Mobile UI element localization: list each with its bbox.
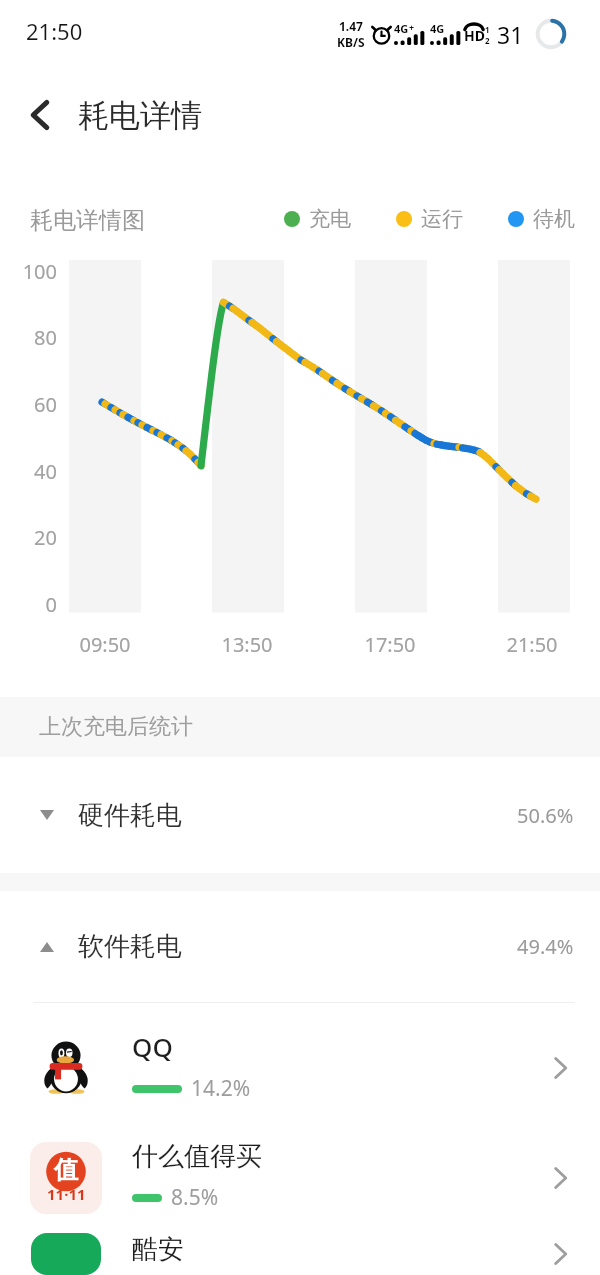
staticText: 硬件耗电 <box>78 799 182 832</box>
staticText: 11·11 <box>47 1184 86 1204</box>
staticText: KB/S <box>337 34 365 50</box>
staticText: 上次充电后统计 <box>39 713 193 741</box>
button[interactable]: 值 <box>0 1123 600 1233</box>
other: Details <box>548 1056 572 1080</box>
staticText: 60 <box>0 391 57 418</box>
staticText: 运行 <box>421 206 463 232</box>
staticText: 21:50 <box>487 631 577 658</box>
staticText: QQ <box>132 1029 173 1064</box>
staticText: 80 <box>0 324 57 351</box>
staticText: 2 <box>485 35 490 46</box>
staticText: 充电 <box>309 206 351 232</box>
button[interactable]: Back <box>10 85 70 145</box>
staticText: 值 <box>54 1155 78 1185</box>
staticText: 软件耗电 <box>78 930 182 963</box>
button[interactable]: 酷安 <box>0 1233 600 1275</box>
staticText: + <box>409 21 415 33</box>
staticText: 耗电详情图 <box>30 206 145 235</box>
staticText: 14.2% <box>191 1074 251 1103</box>
staticText: 20 <box>0 524 57 551</box>
staticText: 21:50 <box>26 16 83 46</box>
staticText: 8.5% <box>171 1183 219 1212</box>
staticText: 49.4% <box>517 933 574 960</box>
staticText: 1 <box>485 24 490 35</box>
button[interactable]: QQ <box>0 1013 600 1123</box>
other: Details <box>548 1166 572 1190</box>
staticText: 耗电详情 <box>78 96 202 135</box>
staticText: 4G <box>430 21 445 36</box>
staticText: 09:50 <box>60 631 150 658</box>
staticText: 31 <box>497 19 524 50</box>
staticText: 什么值得买 <box>132 1140 262 1173</box>
staticText: 13:50 <box>202 631 292 658</box>
staticText: HD <box>464 26 485 45</box>
staticText: 40 <box>0 458 57 485</box>
staticText: 酷安 <box>132 1233 184 1266</box>
staticText: 0 <box>0 591 57 618</box>
button[interactable]: 软件耗电 <box>0 891 600 1002</box>
staticText: 100 <box>0 258 57 285</box>
staticText: 待机 <box>533 206 575 232</box>
staticText: 50.6% <box>517 802 574 829</box>
staticText: 17:50 <box>345 631 435 658</box>
staticText: 1.47 <box>339 18 363 34</box>
other: Details <box>548 1242 572 1266</box>
button[interactable]: 硬件耗电 <box>0 757 600 873</box>
staticText: 4G <box>394 21 409 36</box>
